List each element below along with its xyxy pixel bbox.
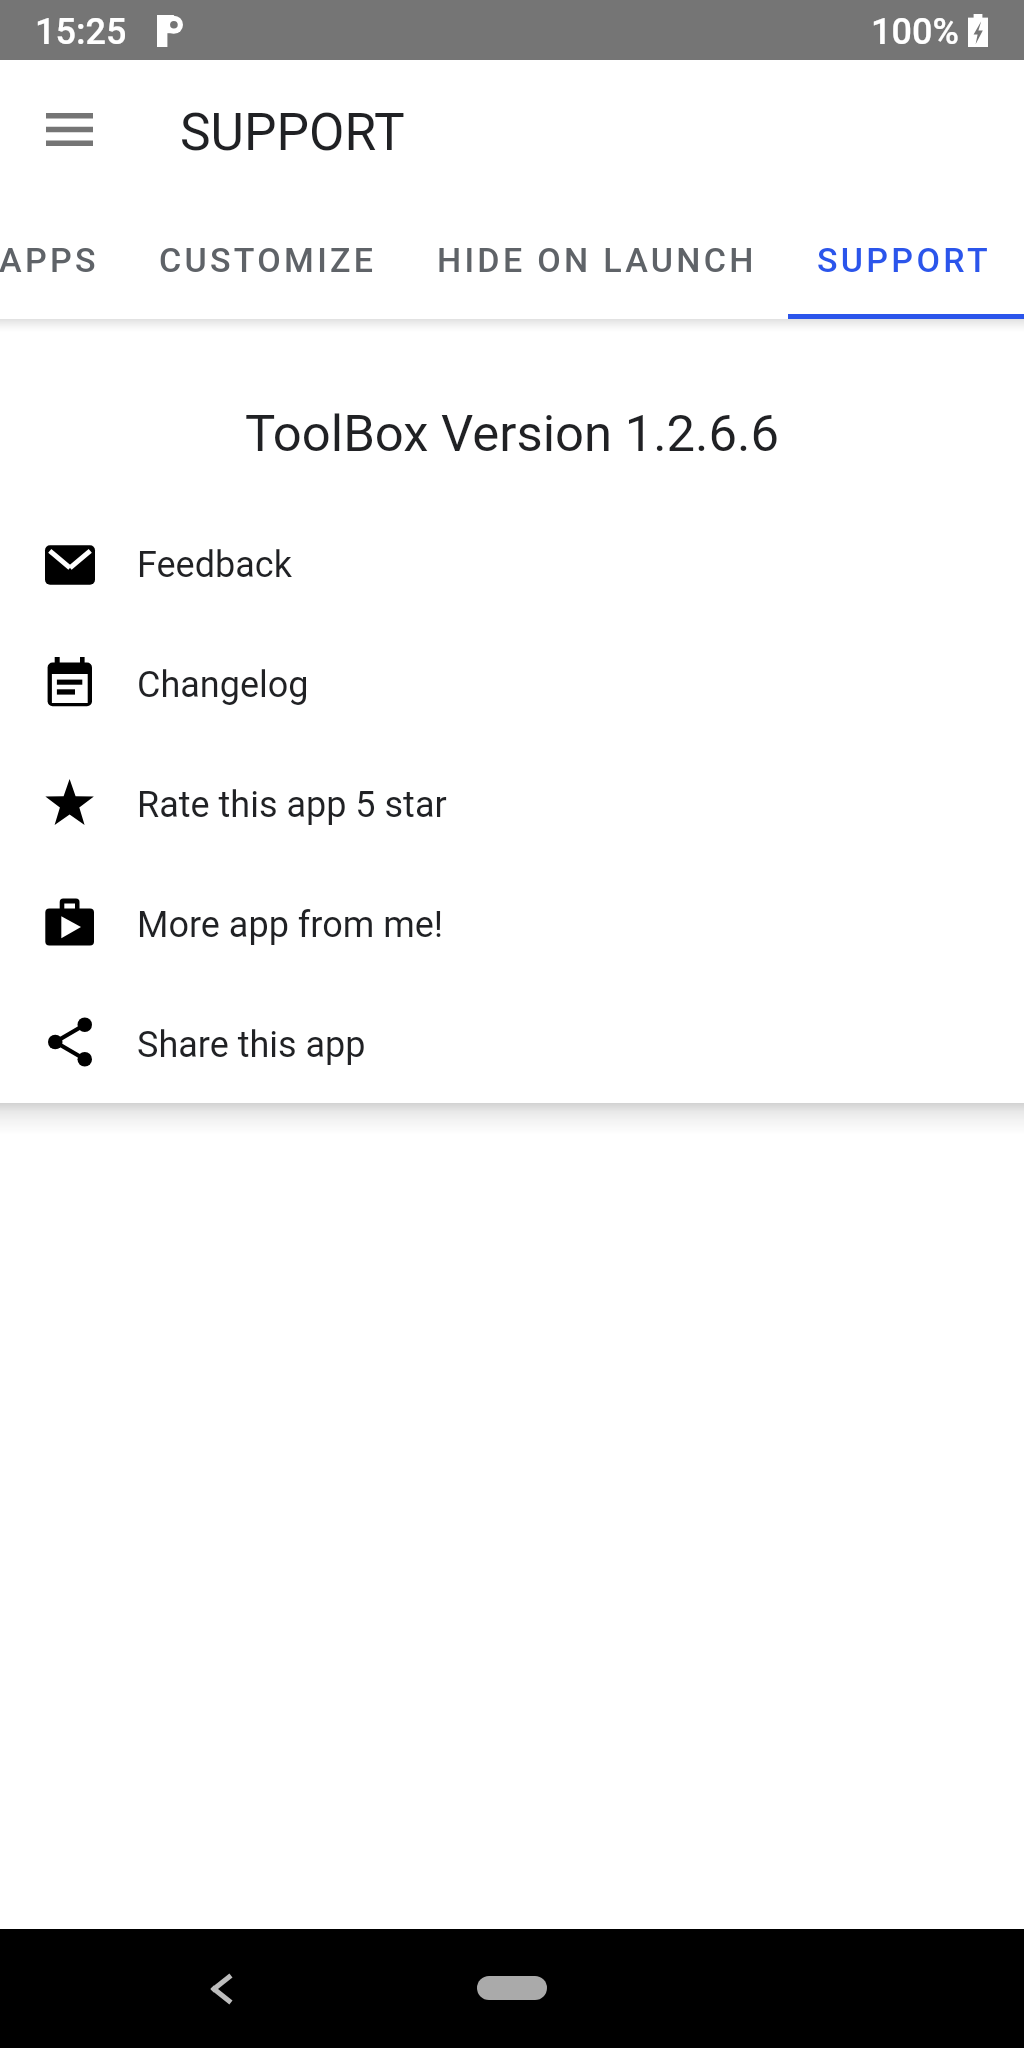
button[interactable]: Changelog — [0, 625, 1024, 745]
staticText: HIDE ON LAUNCH — [437, 240, 757, 280]
button[interactable]: HIDE ON LAUNCH — [407, 205, 787, 319]
button[interactable]: APPS — [0, 205, 129, 319]
staticText: Changelog — [137, 664, 309, 706]
staticText: Feedback — [137, 544, 292, 586]
staticText: 100% — [871, 11, 959, 53]
button[interactable]: SUPPORT — [787, 205, 1021, 319]
staticText: 15:25 — [35, 11, 127, 53]
staticText: Rate this app 5 star — [137, 784, 447, 826]
staticText: SUPPORT — [817, 240, 991, 280]
staticText: APPS — [0, 240, 99, 280]
button[interactable]: Feedback — [0, 505, 1024, 625]
button[interactable]: Back — [161, 1929, 281, 2048]
staticText: ToolBox Version 1.2.6.6 — [0, 404, 1024, 464]
button[interactable]: Home — [477, 1976, 547, 2000]
button[interactable]: Open navigation drawer — [19, 79, 119, 179]
staticText: SUPPORT — [180, 102, 405, 162]
button[interactable]: Rate this app 5 star — [0, 745, 1024, 865]
button[interactable]: More app from me! — [0, 865, 1024, 985]
button[interactable]: CUSTOMIZE — [129, 205, 407, 319]
staticText: CUSTOMIZE — [159, 240, 377, 280]
button[interactable]: Share this app — [0, 985, 1024, 1105]
staticText: Share this app — [137, 1024, 366, 1066]
staticText: More app from me! — [137, 904, 444, 946]
